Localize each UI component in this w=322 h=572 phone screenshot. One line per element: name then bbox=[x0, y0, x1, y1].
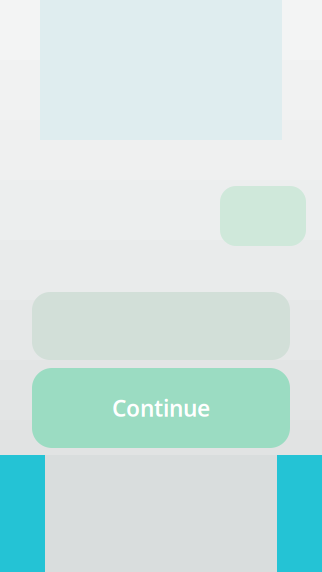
button[interactable]: Continue bbox=[32, 368, 290, 448]
staticText: Continue bbox=[112, 393, 210, 423]
